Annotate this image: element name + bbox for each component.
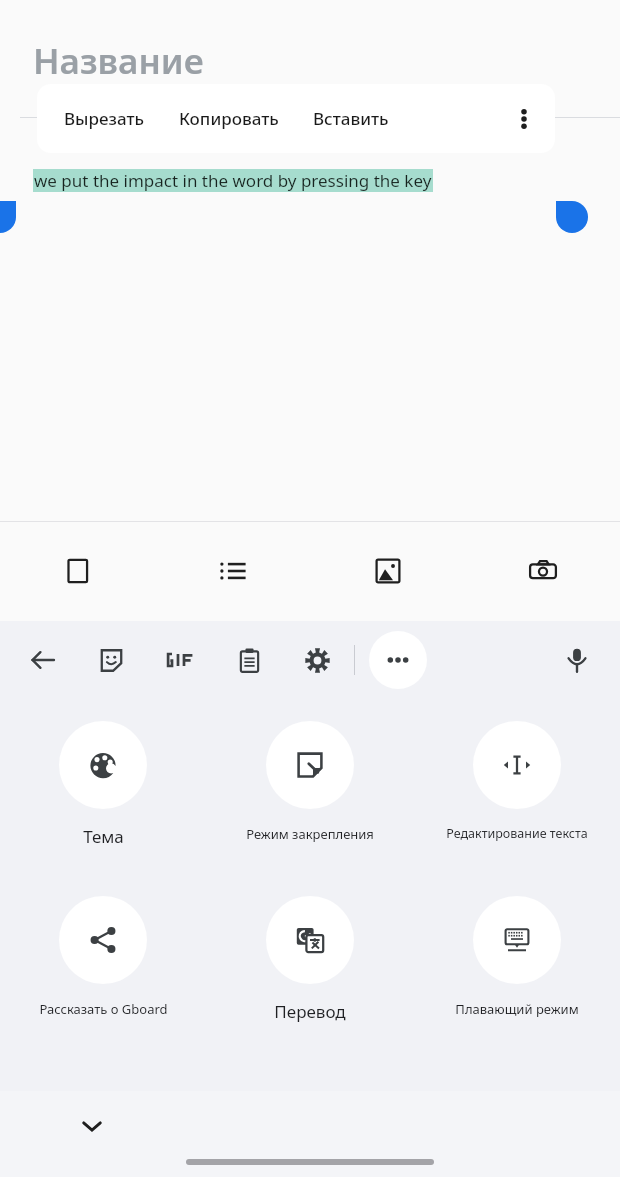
button[interactable]: Checkbox list: [0, 521, 155, 621]
button[interactable]: Bulleted list: [155, 521, 310, 621]
button[interactable]: Вставить: [296, 84, 406, 153]
button[interactable]: Редактирование текста: [413, 721, 620, 842]
staticText: Название: [33, 37, 204, 85]
button[interactable]: Settings: [294, 637, 340, 683]
staticText: Редактирование текста: [446, 825, 588, 842]
button[interactable]: Копировать: [162, 84, 296, 153]
button[interactable]: Hide keyboard: [66, 1100, 118, 1152]
button[interactable]: Voice input: [554, 637, 600, 683]
staticText: Вырезать: [64, 107, 145, 130]
button[interactable]: Вырезать: [47, 84, 162, 153]
staticText: Перевод: [274, 1000, 346, 1023]
button[interactable]: Тема: [0, 721, 206, 848]
button[interactable]: Back: [20, 637, 66, 683]
button[interactable]: Clipboard: [226, 637, 272, 683]
staticText: Режим закрепления: [246, 825, 374, 843]
button[interactable]: Insert image: [310, 521, 465, 621]
staticText: Тема: [83, 825, 124, 848]
button[interactable]: Рассказать о Gboard: [0, 896, 206, 1018]
button[interactable]: Stickers: [88, 637, 134, 683]
staticText: we put the impact in the word by pressin…: [34, 169, 432, 192]
button[interactable]: More: [369, 631, 427, 689]
button[interactable]: GIF: [158, 637, 204, 683]
staticText: Копировать: [179, 107, 279, 130]
button[interactable]: More options: [493, 84, 555, 153]
button[interactable]: Перевод: [206, 896, 413, 1023]
staticText: Вставить: [313, 107, 389, 130]
staticText: Рассказать о Gboard: [39, 1000, 168, 1018]
staticText: Плавающий режим: [455, 1000, 579, 1018]
button[interactable]: Плавающий режим: [413, 896, 620, 1018]
button[interactable]: Take photo: [465, 521, 620, 621]
button[interactable]: Режим закрепления: [206, 721, 413, 843]
